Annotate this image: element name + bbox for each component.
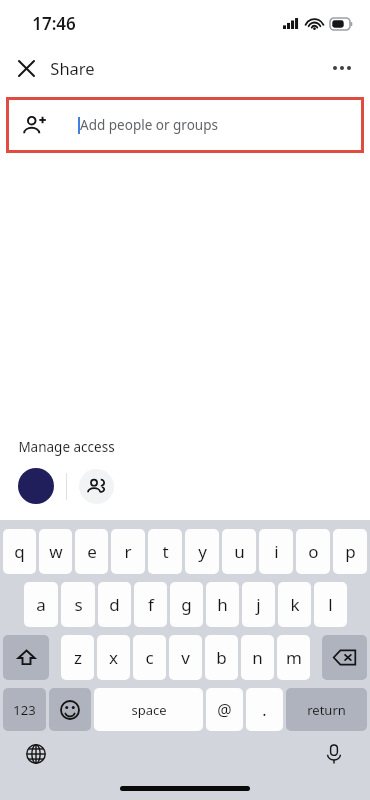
- button[interactable]: z: [61, 635, 94, 680]
- button[interactable]: p: [333, 529, 367, 574]
- staticText: t: [162, 540, 169, 563]
- staticText: a: [36, 593, 46, 616]
- staticText: .: [262, 699, 267, 721]
- button[interactable]: x: [97, 635, 130, 680]
- button[interactable]: Backspace: [322, 635, 367, 680]
- button[interactable]: space: [94, 688, 203, 731]
- button[interactable]: Owner: [18, 468, 54, 504]
- staticText: f: [148, 593, 154, 616]
- button[interactable]: Emoji: [49, 688, 91, 731]
- button[interactable]: m: [277, 635, 310, 680]
- button[interactable]: b: [205, 635, 238, 680]
- staticText: d: [109, 593, 120, 616]
- button[interactable]: h: [206, 582, 239, 627]
- staticText: Manage access: [18, 438, 115, 456]
- staticText: Add people or groups: [80, 116, 218, 134]
- button[interactable]: n: [241, 635, 274, 680]
- button[interactable]: w: [39, 529, 72, 574]
- staticText: 17:46: [32, 12, 76, 35]
- staticText: n: [252, 646, 263, 669]
- button[interactable]: Manage people: [79, 469, 114, 504]
- button[interactable]: l: [314, 582, 347, 627]
- button[interactable]: Add people or groups: [10, 101, 360, 149]
- staticText: Share: [50, 57, 95, 79]
- staticText: space: [131, 701, 167, 719]
- staticText: j: [256, 593, 261, 616]
- button[interactable]: o: [296, 529, 330, 574]
- button[interactable]: k: [278, 582, 311, 627]
- staticText: v: [181, 646, 190, 669]
- staticText: y: [198, 540, 207, 563]
- button[interactable]: v: [169, 635, 202, 680]
- staticText: 123: [13, 701, 36, 719]
- button[interactable]: d: [98, 582, 131, 627]
- button[interactable]: Shift: [3, 635, 49, 680]
- staticText: m: [286, 646, 302, 669]
- button[interactable]: g: [170, 582, 203, 627]
- staticText: @: [217, 699, 232, 721]
- staticText: i: [274, 540, 279, 563]
- staticText: b: [216, 646, 227, 669]
- button[interactable]: i: [259, 529, 293, 574]
- button[interactable]: Voice input: [319, 739, 349, 769]
- button[interactable]: u: [222, 529, 256, 574]
- button[interactable]: @: [206, 688, 243, 731]
- staticText: return: [307, 701, 346, 719]
- button[interactable]: c: [133, 635, 166, 680]
- staticText: w: [49, 540, 63, 563]
- staticText: c: [145, 646, 154, 669]
- button[interactable]: r: [111, 529, 145, 574]
- button[interactable]: y: [185, 529, 219, 574]
- button[interactable]: Close: [7, 49, 45, 87]
- button[interactable]: More options: [322, 48, 362, 88]
- button[interactable]: 123: [3, 688, 46, 731]
- button[interactable]: q: [3, 529, 36, 574]
- button[interactable]: f: [134, 582, 167, 627]
- button[interactable]: return: [286, 688, 367, 731]
- button[interactable]: t: [148, 529, 182, 574]
- button[interactable]: j: [242, 582, 275, 627]
- staticText: u: [234, 540, 245, 563]
- staticText: x: [109, 646, 118, 669]
- staticText: z: [74, 646, 82, 669]
- button[interactable]: .: [246, 688, 283, 731]
- button[interactable]: s: [61, 582, 95, 627]
- staticText: p: [345, 540, 356, 563]
- button[interactable]: a: [24, 582, 58, 627]
- staticText: k: [290, 593, 300, 616]
- staticText: h: [217, 593, 228, 616]
- staticText: e: [87, 540, 97, 563]
- staticText: q: [14, 540, 25, 563]
- staticText: o: [308, 540, 319, 563]
- staticText: s: [74, 593, 83, 616]
- staticText: g: [181, 593, 192, 616]
- staticText: r: [124, 540, 132, 563]
- button[interactable]: Change keyboard: [21, 739, 51, 769]
- staticText: l: [328, 593, 333, 616]
- button[interactable]: e: [75, 529, 108, 574]
